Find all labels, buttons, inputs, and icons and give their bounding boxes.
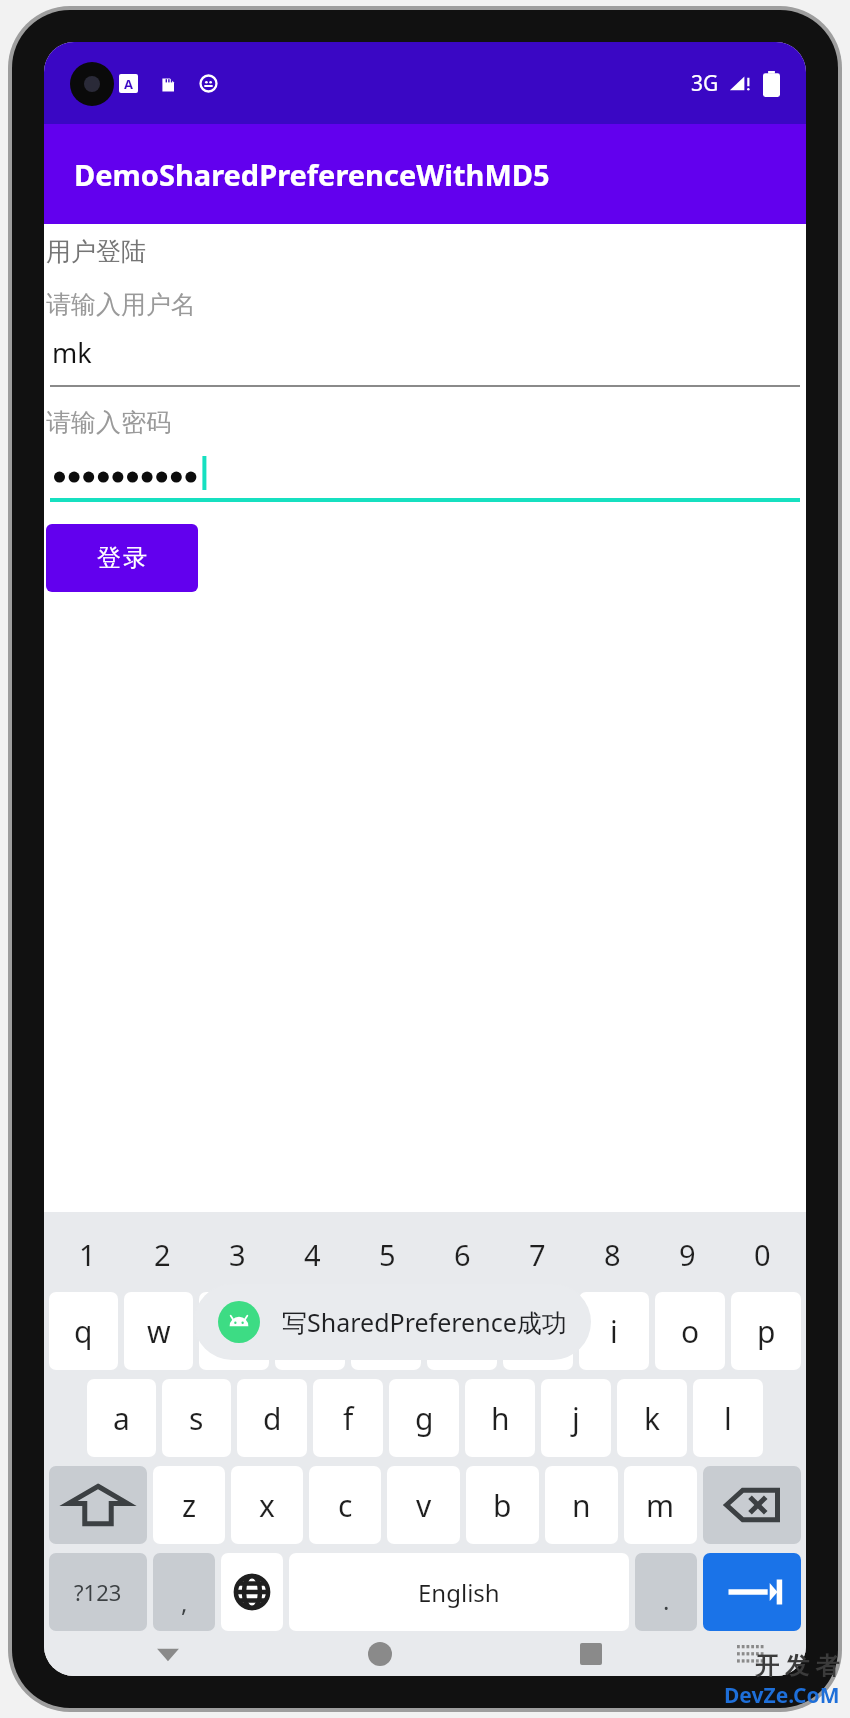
button[interactable]: Shift xyxy=(49,1466,147,1544)
button[interactable]: 1 xyxy=(50,1218,125,1290)
button[interactable]: j xyxy=(541,1379,611,1457)
staticText: n xyxy=(572,1485,591,1526)
button[interactable]: . xyxy=(635,1553,697,1631)
button[interactable]: 7 xyxy=(500,1218,575,1290)
button[interactable]: p xyxy=(731,1292,801,1370)
button[interactable]: , xyxy=(153,1553,215,1631)
staticText: 1 xyxy=(79,1235,96,1274)
button[interactable]: c xyxy=(309,1466,381,1544)
button[interactable]: i xyxy=(579,1292,649,1370)
button[interactable]: e xyxy=(199,1292,269,1370)
staticText: s xyxy=(189,1398,204,1439)
staticText: 登录 xyxy=(96,543,148,573)
button[interactable]: m xyxy=(624,1466,697,1544)
staticText: mk xyxy=(52,334,92,371)
staticText: i xyxy=(610,1311,618,1352)
button[interactable]: g xyxy=(389,1379,459,1457)
staticText: q xyxy=(74,1311,93,1352)
button[interactable]: 8 xyxy=(575,1218,650,1290)
button[interactable]: 0 xyxy=(725,1218,800,1290)
button[interactable]: Backspace xyxy=(703,1466,801,1544)
staticText: 01 xyxy=(74,70,97,97)
button[interactable]: d xyxy=(237,1379,307,1457)
button[interactable]: 4 xyxy=(275,1218,350,1290)
staticText: y xyxy=(454,1311,470,1352)
staticText: , xyxy=(181,1586,188,1619)
staticText: h xyxy=(491,1398,510,1439)
button[interactable]: Home xyxy=(274,1631,485,1676)
button[interactable]: n xyxy=(545,1466,618,1544)
staticText: a xyxy=(113,1398,130,1439)
staticText: f xyxy=(343,1398,354,1439)
button[interactable]: Back xyxy=(62,1631,274,1676)
staticText: w xyxy=(147,1311,171,1352)
button[interactable]: Change language xyxy=(221,1553,283,1631)
button[interactable]: 9 xyxy=(650,1218,725,1290)
button[interactable] xyxy=(50,456,800,502)
button[interactable]: s xyxy=(162,1379,231,1457)
staticText: DemoSharedPreferenceWithMD5 xyxy=(74,155,550,194)
staticText: 写SharedPreference成功 xyxy=(282,1305,567,1339)
button[interactable]: x xyxy=(231,1466,303,1544)
staticText: x xyxy=(259,1485,275,1526)
staticText: 8 xyxy=(604,1235,621,1274)
button[interactable]: f xyxy=(313,1379,383,1457)
button[interactable]: ?123 xyxy=(49,1553,147,1631)
staticText: 0 xyxy=(754,1235,771,1274)
button[interactable]: q xyxy=(49,1292,118,1370)
staticText: 5 xyxy=(379,1235,396,1274)
staticText: e xyxy=(226,1311,243,1352)
button[interactable]: v xyxy=(387,1466,460,1544)
button[interactable]: b xyxy=(466,1466,539,1544)
staticText: o xyxy=(681,1311,700,1352)
staticText: 3 xyxy=(229,1235,246,1274)
button[interactable]: 2 xyxy=(125,1218,200,1290)
button[interactable]: l xyxy=(693,1379,763,1457)
button[interactable]: u xyxy=(503,1292,573,1370)
staticText: c xyxy=(338,1485,353,1526)
staticText: 请输入用户名 xyxy=(46,289,196,320)
staticText: . xyxy=(663,1584,670,1617)
staticText: r xyxy=(304,1311,317,1352)
button[interactable]: 5 xyxy=(350,1218,425,1290)
button[interactable]: y xyxy=(427,1292,497,1370)
button[interactable]: o xyxy=(655,1292,725,1370)
staticText: u xyxy=(529,1311,548,1352)
button[interactable]: h xyxy=(465,1379,535,1457)
staticText: k xyxy=(644,1398,661,1439)
staticText: 3G xyxy=(691,69,719,98)
staticText: 7 xyxy=(529,1235,546,1274)
staticText: 9 xyxy=(679,1235,696,1274)
staticText: 请输入密码 xyxy=(46,407,171,438)
button[interactable]: r xyxy=(275,1292,345,1370)
staticText: p xyxy=(757,1311,776,1352)
button[interactable]: z xyxy=(153,1466,225,1544)
staticText: 开 发 者 xyxy=(755,1648,840,1681)
button[interactable]: 6 xyxy=(425,1218,500,1290)
staticText: ?123 xyxy=(74,1577,122,1607)
staticText: m xyxy=(646,1485,675,1526)
staticText: English xyxy=(418,1576,500,1609)
staticText: z xyxy=(182,1485,197,1526)
button[interactable]: a xyxy=(87,1379,156,1457)
staticText: l xyxy=(724,1398,732,1439)
button[interactable]: 登录 xyxy=(46,524,198,592)
staticText: g xyxy=(415,1398,434,1439)
staticText: 用户登陆 xyxy=(46,236,146,267)
staticText: 2 xyxy=(154,1235,171,1274)
staticText: DevZe.CoM xyxy=(724,1681,840,1710)
button[interactable]: mk xyxy=(50,334,800,387)
staticText: A xyxy=(124,75,133,93)
button[interactable]: w xyxy=(124,1292,193,1370)
staticText: t xyxy=(381,1311,392,1352)
button[interactable]: 3 xyxy=(200,1218,275,1290)
staticText: b xyxy=(493,1485,512,1526)
staticText: j xyxy=(572,1398,580,1439)
button[interactable]: English xyxy=(289,1553,629,1631)
staticText: 6 xyxy=(454,1235,471,1274)
button[interactable]: k xyxy=(617,1379,687,1457)
button[interactable]: Switch keyboard xyxy=(696,1631,806,1676)
button[interactable]: t xyxy=(351,1292,421,1370)
button[interactable]: Next xyxy=(703,1553,801,1631)
button[interactable]: Recents xyxy=(485,1631,696,1676)
